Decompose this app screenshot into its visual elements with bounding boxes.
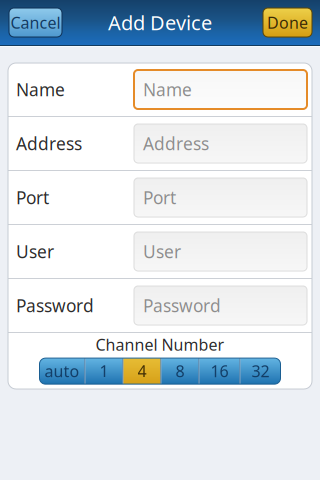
staticText: Port <box>16 186 49 209</box>
staticText: Password <box>16 294 94 317</box>
staticText: Channel Number <box>95 334 224 355</box>
staticText: Done <box>267 12 308 33</box>
staticText: Password <box>143 294 221 317</box>
staticText: Add Device <box>108 9 212 36</box>
button[interactable]: 16 <box>199 358 239 384</box>
staticText: 32 <box>251 360 269 382</box>
button[interactable]: Cancel <box>9 8 62 37</box>
button[interactable]: auto <box>39 358 84 384</box>
staticText: 8 <box>175 360 184 382</box>
staticText: Cancel <box>10 12 60 33</box>
staticText: auto <box>44 360 79 382</box>
staticText: Name <box>16 78 65 101</box>
staticText: User <box>16 240 54 263</box>
button[interactable]: 8 <box>161 358 198 384</box>
staticText: Address <box>16 132 82 155</box>
staticText: 16 <box>210 360 228 382</box>
staticText: Address <box>143 132 209 155</box>
button[interactable]: 4 <box>123 358 160 384</box>
staticText: 4 <box>137 360 146 382</box>
staticText: 1 <box>99 360 108 382</box>
button[interactable]: 32 <box>240 358 280 384</box>
staticText: User <box>143 240 181 263</box>
staticText: Port <box>143 186 176 209</box>
button[interactable]: 1 <box>85 358 122 384</box>
button[interactable]: Done <box>263 8 312 37</box>
staticText: Name <box>143 78 192 101</box>
